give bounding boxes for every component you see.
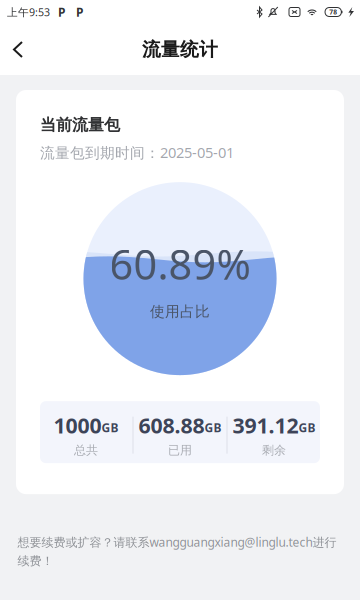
staticText: 已用 bbox=[168, 443, 192, 457]
staticText: 1000 bbox=[53, 411, 101, 439]
staticText: 流量包到期时间：2025-05-01 bbox=[40, 143, 234, 162]
button[interactable]: Back bbox=[0, 29, 34, 70]
staticText: 剩余 bbox=[262, 443, 286, 457]
staticText: P bbox=[58, 4, 65, 20]
staticText: 总共 bbox=[74, 443, 98, 457]
staticText: 上午9:53 bbox=[7, 5, 50, 19]
staticText: 608.88 bbox=[138, 411, 204, 439]
staticText: GB bbox=[298, 420, 315, 436]
staticText: 当前流量包 bbox=[40, 115, 120, 135]
staticText: P bbox=[76, 4, 83, 20]
staticText: 78 bbox=[329, 8, 337, 16]
staticText: 使用占比 bbox=[150, 303, 210, 321]
staticText: 想要续费或扩容？请联系wangguangxiang@linglu.tech进行续… bbox=[17, 534, 336, 568]
staticText: 60.89% bbox=[109, 236, 250, 291]
staticText: GB bbox=[101, 420, 118, 436]
staticText: 流量统计 bbox=[142, 38, 218, 61]
staticText: GB bbox=[204, 420, 221, 436]
staticText: 391.12 bbox=[232, 411, 298, 439]
